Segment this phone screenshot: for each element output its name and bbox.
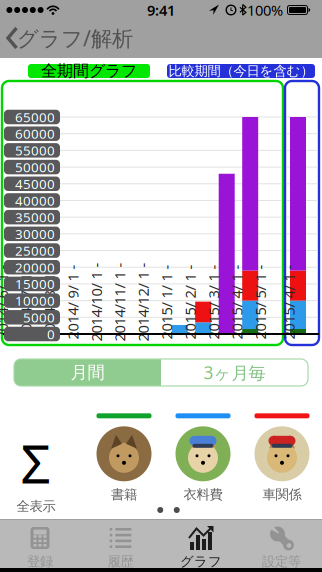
staticText: 全期間グラフ xyxy=(41,61,137,81)
staticText: 35000 xyxy=(15,208,55,226)
staticText: 2014/11/ 1 - xyxy=(80,292,159,312)
staticText: 45000 xyxy=(15,175,55,193)
staticText: 2015/ 4/ 1 - xyxy=(251,292,322,312)
staticText: 書籍 xyxy=(111,486,137,503)
staticText: 2014/ 7/ 1 - xyxy=(0,292,63,312)
button[interactable]: 登録 xyxy=(1,520,79,570)
staticText: 登録 xyxy=(27,553,53,570)
staticText: 0 xyxy=(47,325,55,343)
staticText: 全表示 xyxy=(16,498,55,515)
staticText: 月間 xyxy=(70,362,104,383)
staticText: 2014/ 6/ 1 - xyxy=(0,292,40,312)
button[interactable]: Σ xyxy=(16,427,55,515)
staticText: 2015/ 5/ 1 - xyxy=(223,292,298,312)
staticText: 25000 xyxy=(15,242,55,259)
staticText: 履歴 xyxy=(107,553,133,570)
staticText: 2015/ 3/ 1 - xyxy=(176,292,251,312)
staticText: 20000 xyxy=(15,258,55,276)
button[interactable]: 履歴 xyxy=(81,520,159,570)
staticText: 2015/ 2/ 1 - xyxy=(152,292,227,312)
staticText: 40000 xyxy=(15,192,55,209)
staticText: 2015/ 4/ 1 - xyxy=(199,292,274,312)
staticText: 55000 xyxy=(15,141,55,159)
staticText: 30000 xyxy=(15,225,55,243)
button[interactable]: Page 1 of 2 xyxy=(148,503,188,517)
staticText: 2014/ 9/ 1 - xyxy=(35,292,110,312)
staticText: 60000 xyxy=(15,125,55,142)
button[interactable]: 月間 xyxy=(14,359,161,386)
button[interactable]: 車関係 xyxy=(254,413,309,503)
staticText: グラフ/解析 xyxy=(17,24,133,52)
staticText: 2014/12/ 1 - xyxy=(104,292,183,312)
staticText: 15000 xyxy=(15,275,55,293)
staticText: 衣料費 xyxy=(183,486,222,503)
staticText: 9:41 xyxy=(147,0,175,20)
staticText: 65000 xyxy=(15,108,55,126)
staticText: 2014/10/ 1 - xyxy=(57,292,136,312)
button[interactable]: 衣料費 xyxy=(175,413,230,503)
staticText: 5000 xyxy=(23,308,55,326)
staticText: 50000 xyxy=(15,158,55,176)
staticText: Σ xyxy=(20,427,51,498)
staticText: 3ヶ月毎 xyxy=(203,361,265,384)
staticText: グラフ xyxy=(180,553,222,570)
staticText: 100% xyxy=(247,0,283,20)
button[interactable]: 書籍 xyxy=(96,413,151,503)
staticText: 10000 xyxy=(15,292,55,309)
staticText: 設定等 xyxy=(262,553,301,570)
button[interactable]: Back xyxy=(0,18,140,58)
button[interactable]: グラフ xyxy=(162,520,240,570)
staticText: 2014/ 8/ 1 - xyxy=(12,292,87,312)
button[interactable]: 3ヶ月毎 xyxy=(161,359,308,386)
staticText: 車関係 xyxy=(262,486,301,503)
button[interactable]: 設定等 xyxy=(242,520,320,570)
staticText: 2015/ 1/ 1 - xyxy=(129,292,204,312)
staticText: 比較期間（今日を含む） xyxy=(168,63,313,79)
